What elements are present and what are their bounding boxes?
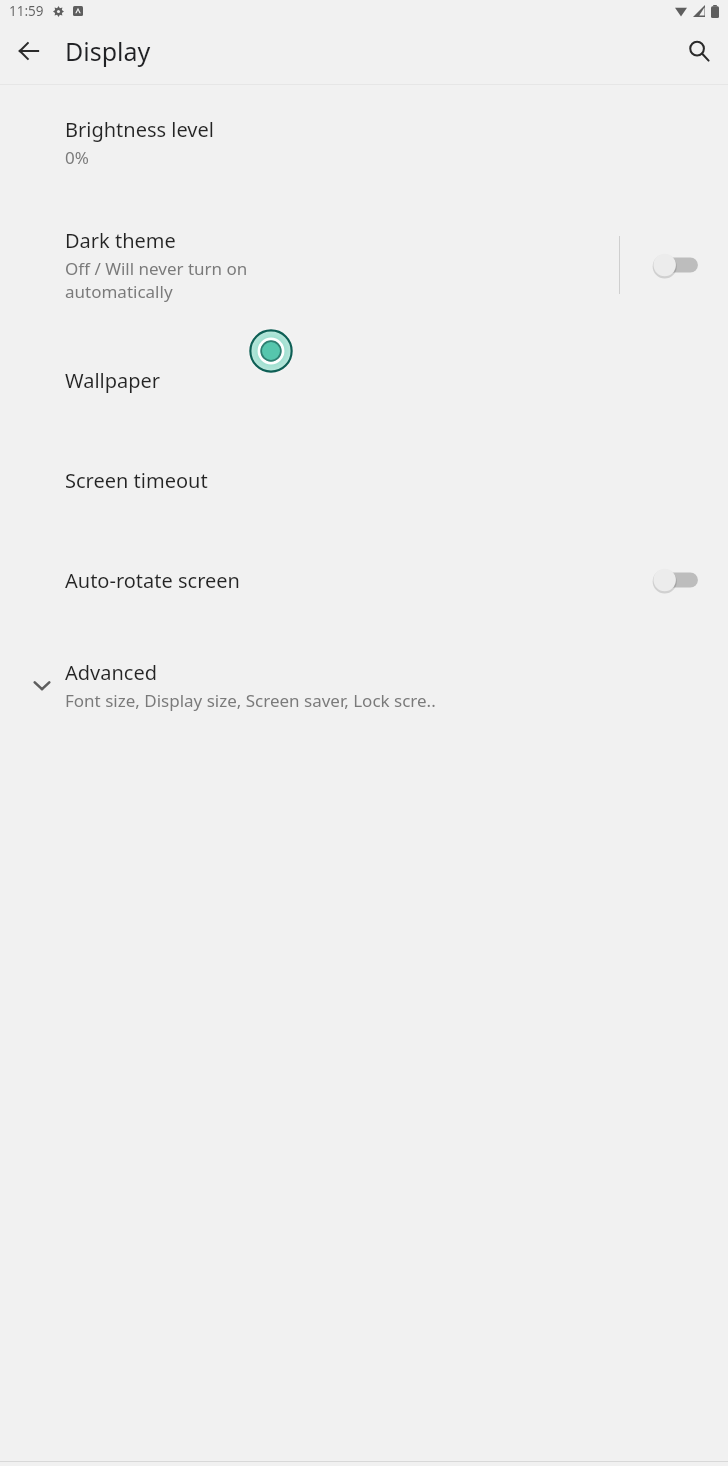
button[interactable]: Auto-rotate screen toggle [620, 530, 728, 630]
button[interactable]: Brightness level [0, 85, 728, 200]
button[interactable]: Wallpaper [0, 330, 728, 430]
button[interactable]: Advanced [0, 630, 728, 740]
staticText: Wallpaper [65, 367, 161, 394]
staticText: Brightness level [65, 116, 214, 143]
button[interactable]: Screen timeout [0, 430, 728, 530]
button[interactable]: Auto-rotate screen [0, 530, 619, 630]
staticText: Font size, Display size, Screen saver, L… [65, 689, 436, 712]
button[interactable]: Back [9, 31, 49, 71]
staticText: Dark theme [65, 227, 176, 254]
staticText: Screen timeout [65, 467, 208, 494]
button[interactable]: Dark theme toggle [620, 200, 728, 330]
button[interactable]: Dark theme [0, 200, 619, 330]
staticText: Auto-rotate screen [65, 567, 240, 594]
staticText: 11:59 [9, 2, 44, 20]
staticText: Advanced [65, 659, 157, 686]
staticText: 0% [65, 146, 89, 169]
staticText: Display [65, 34, 151, 68]
button[interactable]: Search [679, 31, 719, 71]
staticText: Off / Will never turn on automatically [65, 257, 248, 303]
